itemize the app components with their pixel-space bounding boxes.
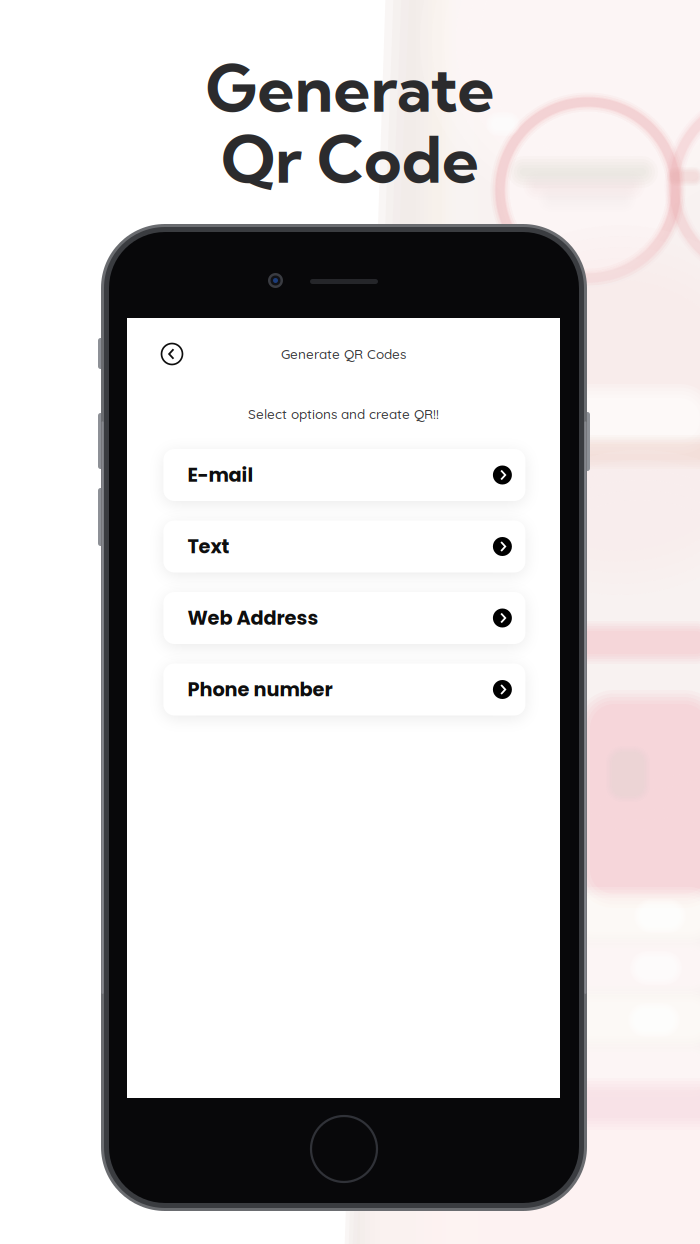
staticText: Text bbox=[187, 533, 229, 560]
button[interactable]: Phone number bbox=[163, 663, 525, 715]
staticText: Generate QR Codes bbox=[281, 346, 406, 362]
staticText: Qr Code bbox=[221, 119, 479, 199]
button[interactable]: Text bbox=[163, 520, 525, 572]
staticText: Generate bbox=[205, 48, 494, 128]
staticText: Select options and create QR!! bbox=[248, 406, 439, 422]
button[interactable]: E-mail bbox=[163, 449, 525, 501]
staticText: Web Address bbox=[187, 604, 318, 632]
staticText: E-mail bbox=[187, 461, 253, 489]
button[interactable]: Back bbox=[152, 334, 192, 374]
staticText: Phone number bbox=[187, 676, 332, 703]
button[interactable]: Web Address bbox=[163, 592, 525, 644]
